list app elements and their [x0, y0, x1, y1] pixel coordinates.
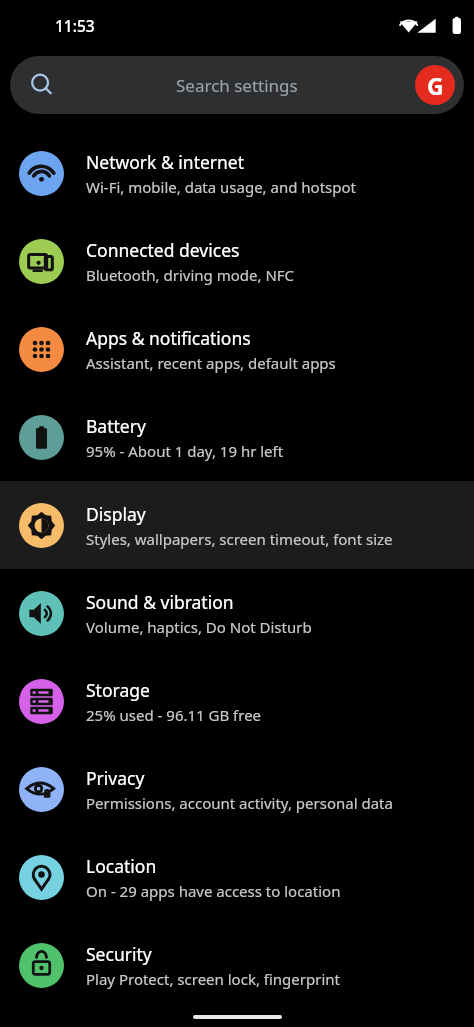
staticText: Network & internet — [86, 150, 245, 174]
staticText: Display — [86, 502, 146, 526]
staticText: Apps & notifications — [86, 326, 251, 350]
staticText: Wi-Fi, mobile, data usage, and hotspot — [86, 177, 356, 197]
staticText: 25% used - 96.11 GB free — [86, 705, 262, 725]
staticText: G — [427, 70, 444, 101]
staticText: Permissions, account activity, personal … — [86, 793, 393, 813]
staticText: Battery — [86, 414, 146, 438]
staticText: Connected devices — [86, 238, 240, 262]
staticText: Privacy — [86, 766, 145, 790]
button[interactable]: Connected devices — [0, 217, 474, 305]
button[interactable]: Sound & vibration — [0, 569, 474, 657]
button[interactable]: Google account — [415, 65, 455, 105]
staticText: Bluetooth, driving mode, NFC — [86, 265, 295, 285]
staticText: 11:53 — [55, 15, 95, 36]
staticText: On - 29 apps have access to location — [86, 881, 341, 901]
staticText: Location — [86, 854, 157, 878]
staticText: Assistant, recent apps, default apps — [86, 353, 336, 373]
button[interactable]: Search settings — [10, 56, 464, 114]
staticText: Volume, haptics, Do Not Disturb — [86, 617, 312, 637]
staticText: Sound & vibration — [86, 590, 234, 614]
button[interactable]: Security — [0, 921, 474, 1009]
button[interactable]: Storage — [0, 657, 474, 745]
button[interactable]: Network & internet — [0, 129, 474, 217]
staticText: Security — [86, 942, 152, 966]
button[interactable]: Privacy — [0, 745, 474, 833]
staticText: Storage — [86, 678, 150, 702]
button[interactable]: Display — [0, 481, 474, 569]
button[interactable]: Battery — [0, 393, 474, 481]
button[interactable]: Location — [0, 833, 474, 921]
staticText: Search settings — [176, 74, 298, 97]
staticText: Play Protect, screen lock, fingerprint — [86, 969, 340, 989]
staticText: Styles, wallpapers, screen timeout, font… — [86, 529, 393, 549]
staticText: 95% - About 1 day, 19 hr left — [86, 441, 284, 461]
button[interactable]: Apps & notifications — [0, 305, 474, 393]
